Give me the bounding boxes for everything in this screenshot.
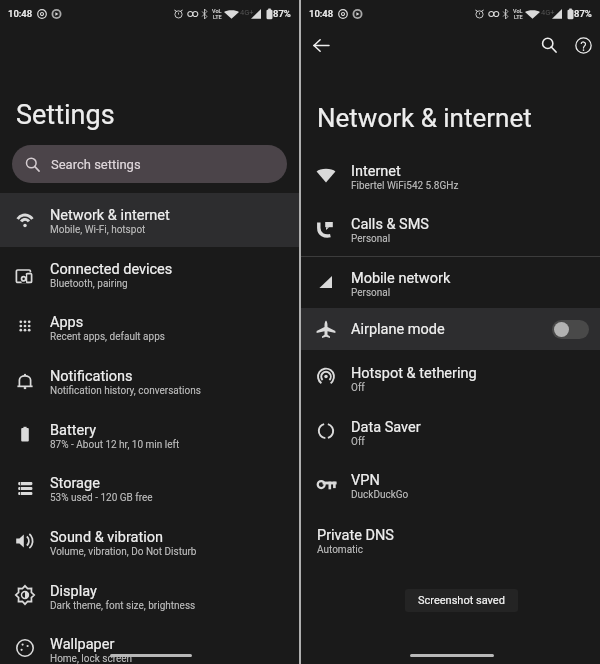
staticText: Hotspot & tethering <box>351 365 477 382</box>
button[interactable]: Private DNS <box>301 513 600 567</box>
button[interactable]: Notifications <box>0 354 299 408</box>
staticText: Notifications <box>50 368 133 385</box>
button[interactable]: Back <box>308 32 334 58</box>
staticText: Airplane mode <box>351 321 445 338</box>
staticText: Internet <box>351 163 401 180</box>
staticText: Calls & SMS <box>351 216 429 233</box>
staticText: LTE <box>514 14 523 20</box>
staticText: Volume, vibration, Do Not Disturb <box>50 546 197 558</box>
staticText: Connected devices <box>50 261 173 278</box>
staticText: Mobile, Wi-Fi, hotspot <box>50 224 146 236</box>
button[interactable]: VPN <box>301 458 600 512</box>
button[interactable]: Search <box>536 32 562 58</box>
button[interactable]: Storage <box>0 461 299 515</box>
staticText: Fibertel WiFi542 5.8GHz <box>351 180 459 192</box>
staticText: Mobile network <box>351 270 451 287</box>
staticText: Display <box>50 583 97 600</box>
button[interactable]: Network & internet <box>0 193 299 247</box>
staticText: VoL <box>212 8 222 14</box>
staticText: Bluetooth, pairing <box>50 278 128 290</box>
staticText: 87% <box>574 8 592 19</box>
staticText: Storage <box>50 475 100 492</box>
staticText: Screenshot saved <box>418 594 505 607</box>
staticText: VPN <box>351 472 380 489</box>
staticText: Sound & vibration <box>50 529 164 546</box>
staticText: Network & internet <box>317 103 532 133</box>
button[interactable]: Help <box>570 32 596 58</box>
button[interactable]: Display <box>0 569 299 623</box>
staticText: 87% <box>273 8 291 19</box>
staticText: Off <box>351 382 365 394</box>
staticText: 53% used - 120 GB free <box>50 492 153 504</box>
staticText: 4G+ <box>240 8 254 17</box>
staticText: 4G+ <box>541 8 555 17</box>
staticText: Wallpaper <box>50 636 115 653</box>
staticText: Home, lock screen <box>50 653 133 664</box>
staticText: Automatic <box>317 544 364 556</box>
staticText: Private DNS <box>317 527 394 544</box>
button[interactable]: Internet <box>301 149 600 203</box>
button[interactable]: Data Saver <box>301 405 600 459</box>
staticText: Search settings <box>51 157 141 172</box>
button[interactable]: Calls & SMS <box>301 202 600 256</box>
staticText: Off <box>351 436 365 448</box>
button[interactable]: Battery <box>0 408 299 462</box>
staticText: DuckDuckGo <box>351 489 409 501</box>
button[interactable]: Wallpaper <box>0 622 299 664</box>
button[interactable]: Mobile network <box>301 256 600 310</box>
staticText: Dark theme, font size, brightness <box>50 600 196 612</box>
button[interactable]: Sound & vibration <box>0 515 299 569</box>
staticText: Data Saver <box>351 419 421 436</box>
button[interactable]: Hotspot & tethering <box>301 351 600 405</box>
staticText: Notification history, conversations <box>50 385 201 397</box>
staticText: Battery <box>50 422 96 439</box>
staticText: Network & internet <box>50 207 170 224</box>
button[interactable]: Airplane mode <box>301 308 600 350</box>
button[interactable]: Search settings <box>12 145 287 183</box>
staticText: 87% - About 12 hr, 10 min left <box>50 439 180 451</box>
button[interactable]: Apps <box>0 300 299 354</box>
button[interactable]: Connected devices <box>0 247 299 301</box>
staticText: Settings <box>16 99 115 131</box>
staticText: LTE <box>213 14 222 20</box>
staticText: VoL <box>513 8 523 14</box>
staticText: 10:48 <box>8 8 33 19</box>
staticText: Personal <box>351 233 391 245</box>
staticText: Personal <box>351 287 391 299</box>
staticText: Apps <box>50 314 84 331</box>
staticText: Recent apps, default apps <box>50 331 165 343</box>
staticText: 10:48 <box>309 8 334 19</box>
